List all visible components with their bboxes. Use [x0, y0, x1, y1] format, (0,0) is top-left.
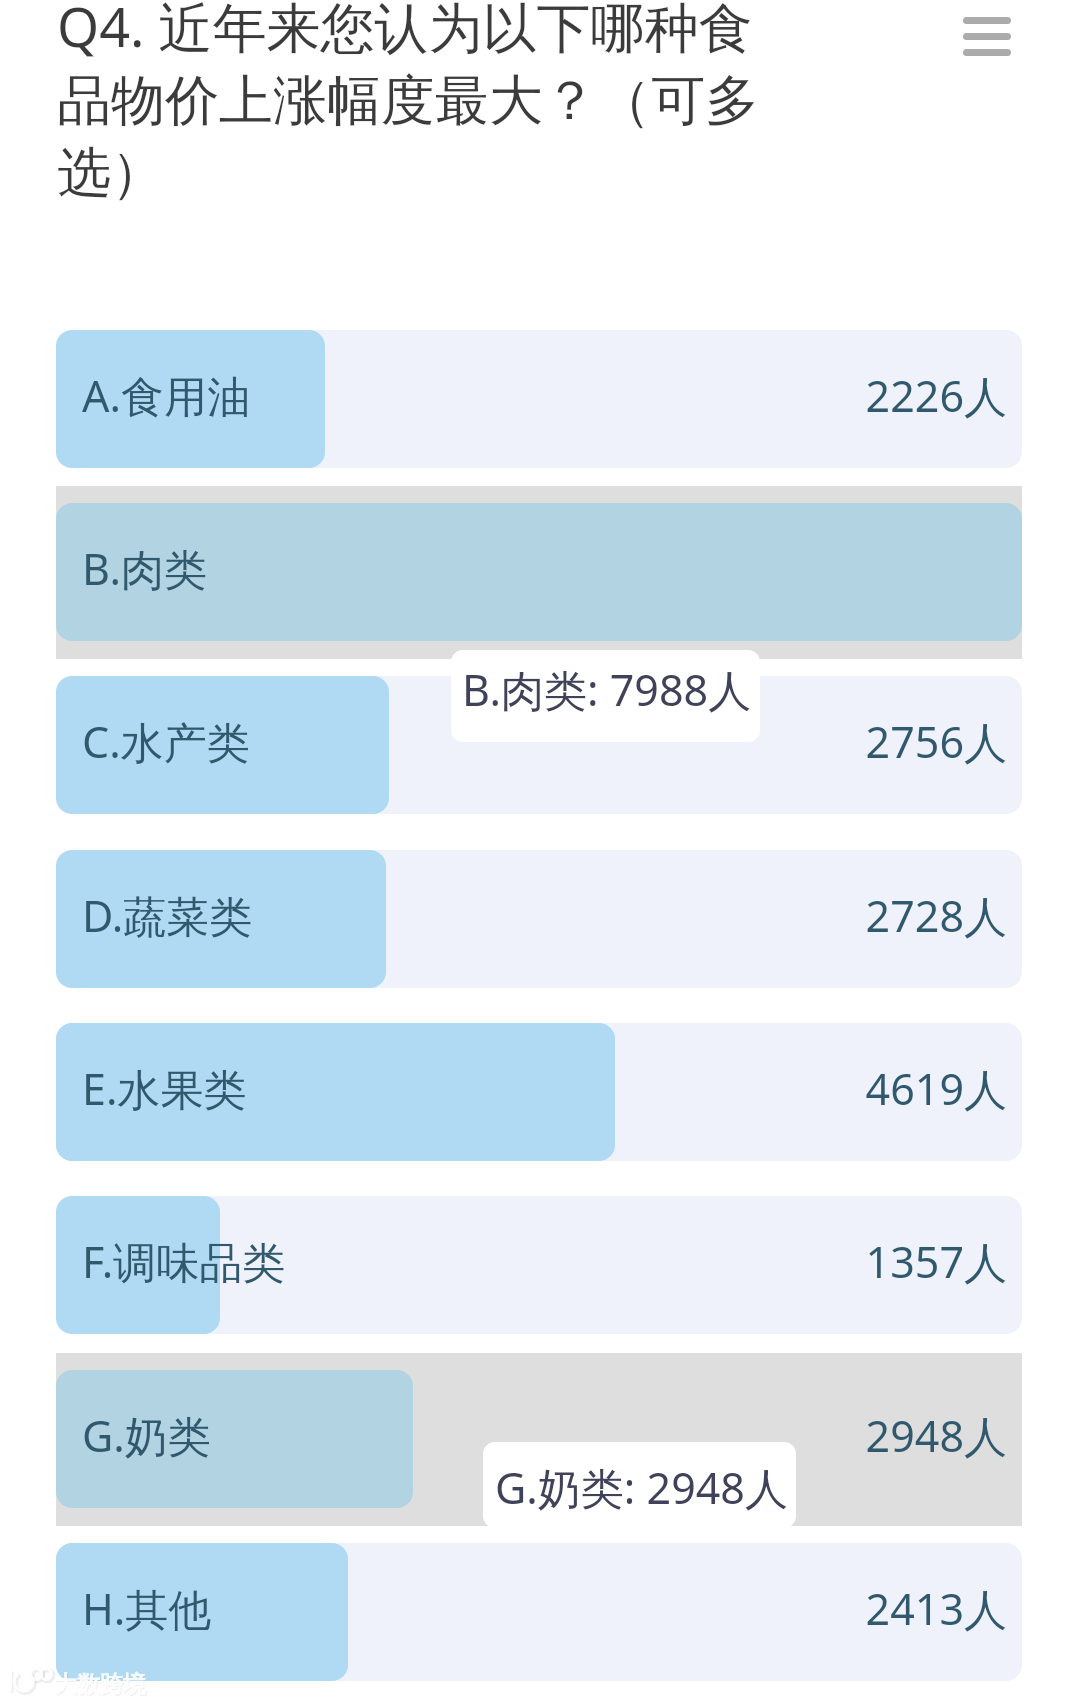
button[interactable]: E.水果类 [56, 1006, 1022, 1179]
button[interactable]: Menu [939, 0, 1035, 72]
staticText: 大数跨境 [55, 1671, 147, 1700]
staticText: G.奶类: 2948人 [495, 1458, 788, 1517]
staticText: E.水果类 [82, 1059, 247, 1118]
staticText: B.肉类: 7988人 [462, 660, 752, 719]
button[interactable]: A.食用油 [56, 313, 1022, 486]
button[interactable]: D.蔬菜类 [56, 833, 1022, 1006]
staticText: 2756人 [756, 712, 1007, 771]
staticText: 2226人 [756, 366, 1007, 425]
staticText: F.调味品类 [82, 1232, 286, 1291]
button[interactable]: G.奶类 [56, 1353, 1022, 1526]
staticText: B.肉类 [82, 539, 208, 598]
staticText: D.蔬菜类 [82, 886, 253, 945]
staticText: C.水产类 [82, 712, 250, 771]
staticText: A.食用油 [82, 366, 251, 425]
button[interactable]: F.调味品类 [56, 1179, 1022, 1352]
staticText: H.其他 [82, 1579, 212, 1638]
staticText: 4619人 [756, 1059, 1007, 1118]
staticText: 2948人 [756, 1406, 1007, 1465]
button[interactable]: B.肉类 [56, 486, 1022, 659]
button[interactable]: C.水产类 [56, 659, 1022, 832]
staticText: G.奶类 [82, 1406, 211, 1465]
staticText: 大数跨境 [54, 1670, 146, 1699]
button[interactable]: H.其他 [56, 1526, 1022, 1699]
staticText: Q4. 近年来您认为以下哪种食 品物价上涨幅度最大？（可多 选） [57, 0, 759, 207]
staticText: 2728人 [756, 886, 1007, 945]
staticText: 2413人 [756, 1579, 1007, 1638]
staticText: 1357人 [756, 1232, 1007, 1291]
